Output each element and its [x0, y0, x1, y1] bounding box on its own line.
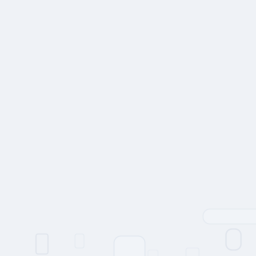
button[interactable]: Profile	[226, 229, 241, 250]
button[interactable]: Library	[36, 234, 48, 254]
